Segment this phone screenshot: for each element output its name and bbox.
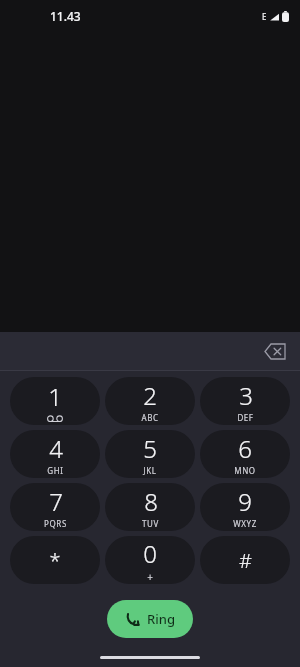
staticText: *: [49, 547, 61, 574]
staticText: 7: [49, 485, 63, 518]
staticText: 6: [238, 432, 252, 465]
button[interactable]: 9: [200, 483, 290, 531]
staticText: 9: [238, 485, 252, 518]
staticText: GHI: [47, 465, 64, 476]
staticText: ABC: [141, 412, 159, 423]
staticText: 3: [239, 379, 253, 412]
button[interactable]: 4: [10, 430, 100, 478]
button[interactable]: 5: [105, 430, 195, 478]
button[interactable]: Ring: [107, 600, 193, 638]
button[interactable]: 2: [105, 377, 195, 425]
button[interactable]: 3: [200, 377, 290, 425]
staticText: 11.43: [50, 8, 81, 24]
button[interactable]: Backspace: [258, 334, 292, 368]
staticText: +: [147, 570, 154, 584]
staticText: 8: [144, 485, 158, 518]
staticText: Ring: [147, 610, 175, 628]
button[interactable]: #: [200, 536, 290, 584]
button[interactable]: *: [10, 536, 100, 584]
staticText: 2: [143, 379, 157, 412]
staticText: JKL: [143, 465, 157, 476]
button[interactable]: 7: [10, 483, 100, 531]
button[interactable]: 6: [200, 430, 290, 478]
button[interactable]: 1: [10, 377, 100, 425]
staticText: #: [239, 547, 252, 574]
staticText: TUV: [142, 518, 159, 529]
staticText: MNO: [234, 465, 256, 476]
staticText: E: [262, 11, 267, 22]
staticText: DEF: [237, 412, 254, 423]
button[interactable]: 0: [105, 536, 195, 584]
staticText: 1: [48, 380, 62, 413]
button[interactable]: 8: [105, 483, 195, 531]
staticText: 5: [143, 432, 157, 465]
staticText: WXYZ: [233, 518, 257, 529]
staticText: 0: [143, 537, 157, 570]
staticText: PQRS: [44, 518, 67, 529]
staticText: 4: [49, 432, 63, 465]
